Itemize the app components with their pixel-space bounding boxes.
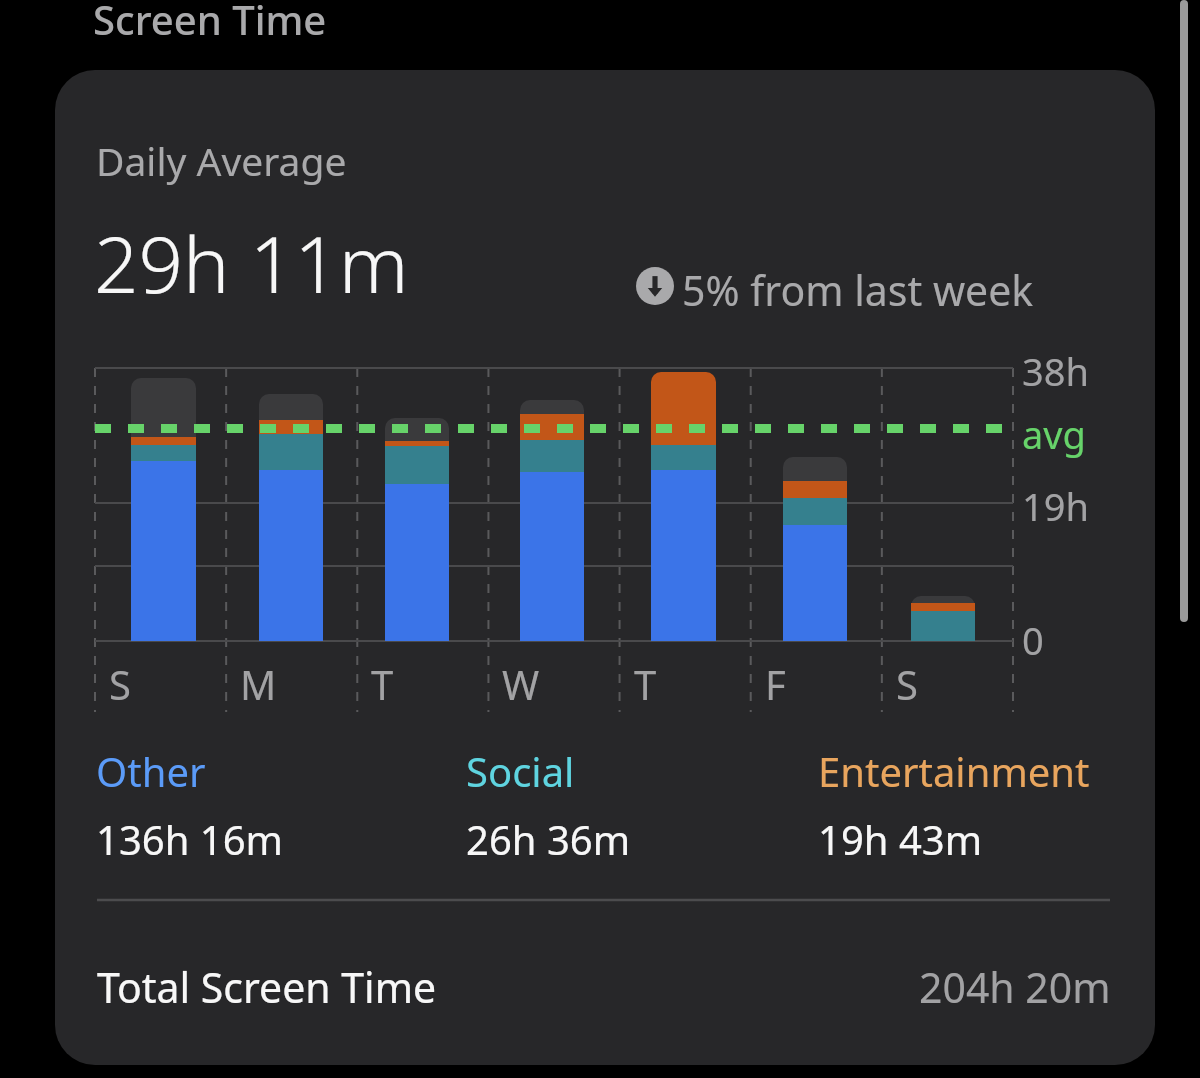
staticText: 136h 16m	[96, 812, 283, 866]
button[interactable]: Decrease	[636, 258, 988, 320]
staticText: 19h 43m	[818, 812, 983, 866]
staticText: F	[765, 657, 786, 711]
staticText: T	[634, 657, 657, 711]
button[interactable]	[55, 70, 1155, 1065]
staticText: 204h 20m	[919, 959, 1111, 1015]
button[interactable]: Total Screen Time	[80, 935, 1125, 1040]
staticText: 38h	[1022, 345, 1089, 397]
staticText: avg	[1022, 408, 1086, 460]
staticText: W	[502, 657, 540, 711]
staticText: Screen Time	[93, 0, 327, 46]
staticText: 19h	[1022, 480, 1089, 532]
staticText: S	[109, 657, 131, 711]
button[interactable]: Other	[96, 744, 206, 798]
staticText: 0	[1022, 614, 1044, 666]
button[interactable]: Social	[466, 744, 575, 798]
staticText: Daily Average	[96, 134, 347, 187]
staticText: S	[896, 657, 918, 711]
other: Decrease	[636, 267, 674, 305]
staticText: T	[371, 657, 394, 711]
staticText: 29h 11m	[94, 210, 409, 316]
staticText: 26h 36m	[466, 812, 631, 866]
staticText: Total Screen Time	[97, 959, 437, 1015]
staticText: M	[240, 657, 277, 711]
button[interactable]: Entertainment	[818, 744, 1090, 798]
staticText: 5% from last week	[682, 262, 1034, 318]
